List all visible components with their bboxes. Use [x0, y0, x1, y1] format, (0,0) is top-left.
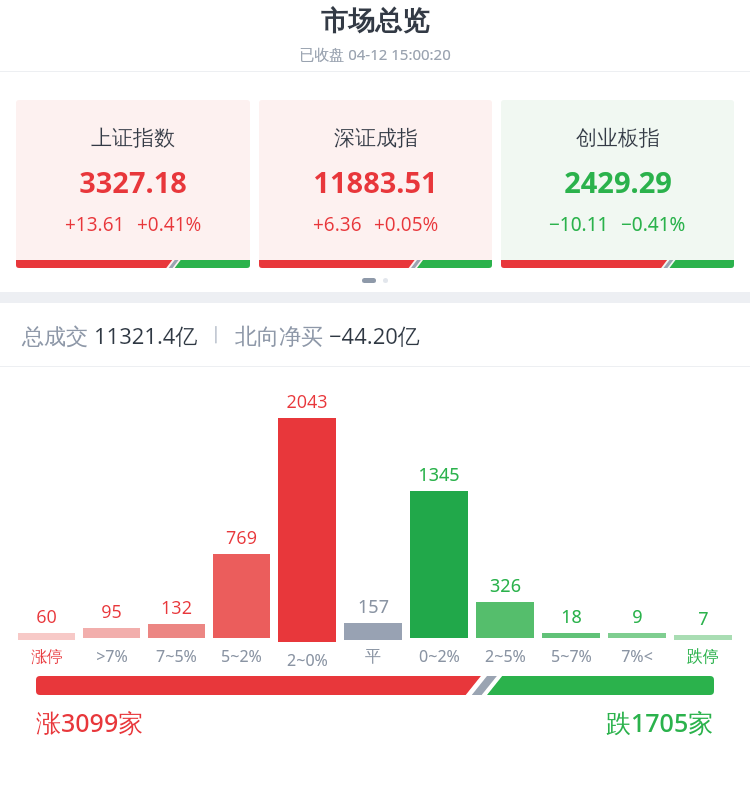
staticText: 9 [632, 604, 643, 629]
staticText: 7 [698, 606, 709, 631]
staticText: 2~0% [287, 649, 328, 667]
staticText: 95 [101, 599, 122, 624]
staticText: 326 [490, 573, 521, 598]
staticText: 上证指数 [91, 125, 175, 151]
button[interactable]: 132 [148, 595, 205, 667]
staticText: 跌停 [687, 647, 719, 667]
staticText: 丨 [198, 322, 235, 347]
staticText: 11883.51 [313, 162, 438, 201]
staticText: 涨停 [31, 647, 63, 667]
button[interactable]: Page 2 [383, 278, 388, 283]
staticText: 1345 [418, 462, 460, 487]
staticText: −44.20亿 [329, 320, 420, 350]
staticText: 2429.29 [564, 162, 672, 201]
staticText: 7%< [621, 645, 653, 667]
button[interactable]: 2043 [278, 389, 336, 667]
staticText: 157 [358, 594, 389, 619]
staticText: 11321.4亿 [94, 320, 198, 350]
staticText: 7~5% [156, 645, 197, 667]
staticText: 2043 [286, 389, 328, 414]
button[interactable]: Page 1 [362, 278, 376, 283]
button[interactable]: 9 [608, 604, 666, 667]
button[interactable]: 95 [83, 599, 140, 667]
staticText: 创业板指 [576, 125, 660, 151]
staticText: 平 [365, 647, 381, 667]
button[interactable]: Advancers versus decliners [36, 676, 714, 695]
staticText: +13.61 [65, 211, 125, 237]
staticText: 总成交 [22, 320, 94, 350]
button[interactable]: 769 [213, 525, 270, 667]
staticText: −10.11 [549, 211, 609, 237]
staticText: 已收盘 04-12 15:00:20 [299, 44, 451, 64]
button[interactable]: 深证成指 [259, 100, 492, 268]
button[interactable]: 总成交 [0, 303, 750, 366]
staticText: 北向净买 [235, 320, 329, 350]
staticText: 5~7% [551, 645, 592, 667]
staticText: 市场总览 [321, 4, 429, 38]
staticText: +0.41% [137, 211, 202, 237]
staticText: 0~2% [419, 645, 460, 667]
staticText: 涨3099家 [36, 705, 144, 739]
staticText: 深证成指 [334, 125, 418, 151]
staticText: 3327.18 [79, 162, 187, 201]
staticText: 60 [36, 604, 57, 629]
staticText: 2~5% [485, 645, 526, 667]
staticText: +0.05% [374, 211, 439, 237]
staticText: 769 [226, 525, 257, 550]
button[interactable]: 157 [344, 594, 402, 667]
button[interactable]: 1345 [410, 462, 468, 667]
staticText: 18 [561, 604, 582, 629]
staticText: 132 [161, 595, 192, 620]
button[interactable]: 326 [476, 573, 534, 667]
staticText: −0.41% [621, 211, 686, 237]
staticText: 5~2% [221, 645, 262, 667]
button[interactable]: 18 [542, 604, 600, 667]
button[interactable]: 60 [18, 604, 75, 667]
staticText: >7% [96, 645, 128, 667]
button[interactable]: 7 [674, 606, 732, 667]
staticText: +6.36 [313, 211, 362, 237]
button[interactable]: 创业板指 [501, 100, 734, 268]
button[interactable]: 上证指数 [16, 100, 250, 268]
staticText: 跌1705家 [606, 705, 714, 739]
